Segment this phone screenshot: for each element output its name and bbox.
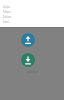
button[interactable]: Share (0, 9, 64, 14)
staticText: Receive (27, 70, 38, 74)
staticText: Inbox (3, 15, 12, 19)
button[interactable]: Apps (0, 4, 64, 9)
staticText: Share (3, 10, 12, 14)
button[interactable]: Receive (0, 69, 64, 75)
button[interactable]: Send file (21, 33, 35, 47)
staticText: Apps (3, 5, 11, 9)
staticText: Sent (3, 20, 10, 24)
button[interactable]: Inbox (0, 14, 64, 19)
button[interactable]: Receive file (21, 53, 35, 67)
button[interactable]: Sent (0, 19, 64, 24)
